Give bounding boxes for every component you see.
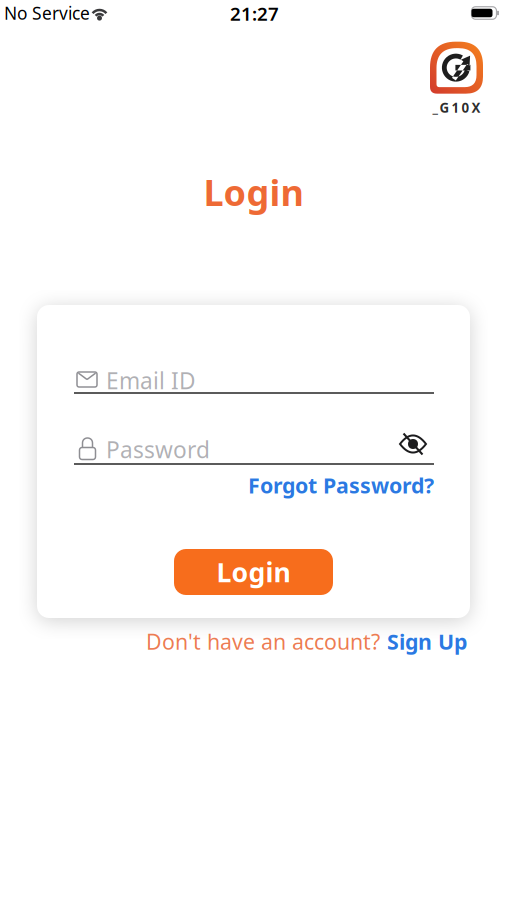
staticText: Login bbox=[203, 168, 303, 216]
staticText: No Service bbox=[4, 1, 90, 24]
button[interactable]: Show password bbox=[398, 432, 428, 456]
staticText: 21:27 bbox=[230, 1, 279, 26]
button[interactable]: Forgot Password? bbox=[248, 471, 434, 499]
staticText: Email ID bbox=[106, 365, 196, 396]
staticText: Don't have an account? bbox=[146, 627, 380, 656]
staticText: Sign Up bbox=[387, 627, 467, 656]
staticText: _G10X bbox=[432, 99, 480, 116]
button[interactable]: Login bbox=[174, 549, 333, 595]
staticText: Password bbox=[106, 434, 210, 465]
button[interactable]: Sign Up bbox=[387, 627, 467, 656]
staticText: Login bbox=[216, 554, 290, 590]
staticText: Forgot Password? bbox=[248, 471, 434, 499]
